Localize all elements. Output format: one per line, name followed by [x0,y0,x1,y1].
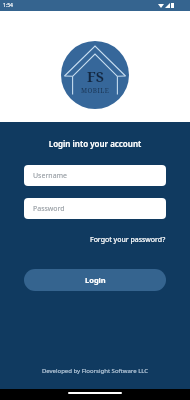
staticText: 1:54 [3,2,13,9]
button[interactable]: Forgot your password? [90,235,166,245]
staticText: Password [33,204,65,214]
button[interactable]: Login [24,269,166,291]
button[interactable]: Username [24,165,166,186]
staticText: Login [85,275,106,285]
button[interactable]: Password [24,198,166,219]
staticText: Developed by Floorsight Software LLC [0,367,190,375]
staticText: FS [87,67,104,86]
staticText: Login into your account [0,138,190,149]
staticText: MOBILE [81,86,110,95]
staticText: Username [33,171,68,181]
staticText: Forgot your password? [90,235,166,245]
other: FS Mobile logo [61,41,129,109]
